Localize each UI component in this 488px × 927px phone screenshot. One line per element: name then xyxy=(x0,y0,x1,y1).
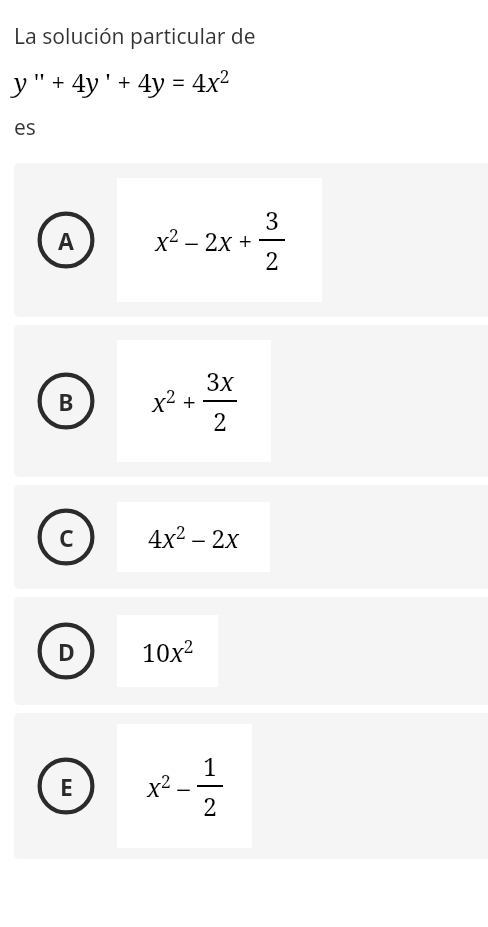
staticText: B xyxy=(58,386,74,417)
staticText: x2 – xyxy=(147,769,197,804)
staticText: A xyxy=(58,225,74,256)
staticText: 2 xyxy=(213,404,227,438)
staticText: 10x2 xyxy=(142,634,194,669)
button[interactable]: B xyxy=(14,325,488,477)
button[interactable]: D xyxy=(14,597,488,705)
staticText: y '' + 4y ' + 4y = 4x2 xyxy=(14,64,230,99)
staticText: D xyxy=(58,636,75,667)
staticText: 3x xyxy=(206,364,234,398)
button[interactable]: C xyxy=(14,485,488,589)
button[interactable]: A xyxy=(14,163,488,317)
staticText: es xyxy=(14,113,36,142)
staticText: 1 xyxy=(203,749,217,783)
staticText: 2 xyxy=(203,789,217,823)
staticText: x2 – 2x + xyxy=(155,223,259,258)
staticText: La solución particular de xyxy=(14,22,256,51)
staticText: C xyxy=(59,522,74,553)
staticText: x2 + xyxy=(152,384,203,419)
staticText: 4x2 – 2x xyxy=(148,520,239,555)
staticText: 3 xyxy=(265,203,279,237)
staticText: E xyxy=(60,771,73,802)
button[interactable]: E xyxy=(14,713,488,859)
staticText: 2 xyxy=(265,243,279,277)
